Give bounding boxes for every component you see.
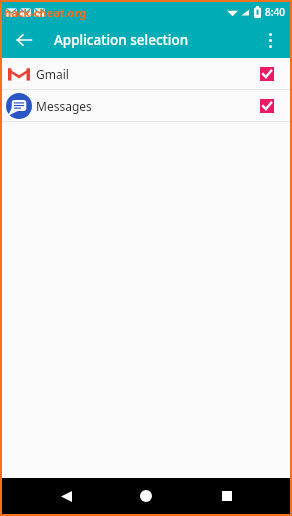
- button[interactable]: More options: [256, 26, 284, 54]
- button[interactable]: Gmail: [2, 58, 290, 89]
- button[interactable]: Navigate up: [10, 26, 38, 54]
- button[interactable]: Home: [129, 479, 163, 513]
- staticText: 8:40: [265, 5, 285, 19]
- staticText: hack-cheat.org: [4, 5, 87, 20]
- button[interactable]: Messages: [2, 90, 290, 121]
- staticText: Application selection: [54, 31, 189, 49]
- button[interactable]: Back: [49, 479, 83, 513]
- button[interactable]: Recent apps: [210, 479, 244, 513]
- staticText: Messages: [36, 98, 260, 114]
- staticText: Gmail: [36, 66, 260, 82]
